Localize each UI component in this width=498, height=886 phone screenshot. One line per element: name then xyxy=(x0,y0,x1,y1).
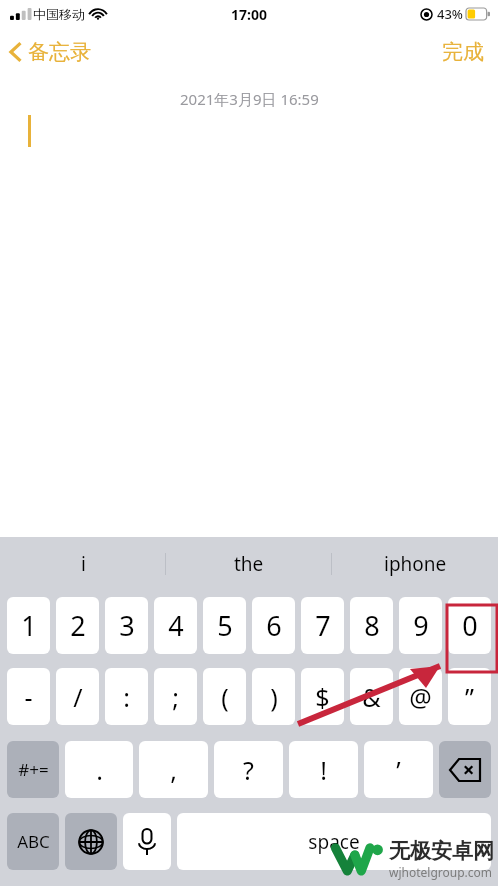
staticText: iphone xyxy=(384,551,447,577)
button[interactable]: 5 xyxy=(203,597,246,654)
staticText: @ xyxy=(409,680,432,714)
button[interactable]: 8 xyxy=(350,597,393,654)
staticText: 5 xyxy=(217,607,233,644)
button[interactable]: ( xyxy=(203,668,246,725)
button[interactable]: , xyxy=(139,741,208,798)
button[interactable]: 9 xyxy=(399,597,442,654)
button[interactable]: / xyxy=(56,668,99,725)
staticText: ? xyxy=(243,753,254,787)
button[interactable]: ? xyxy=(214,741,283,798)
button[interactable]: 1 xyxy=(7,597,50,654)
button[interactable]: : xyxy=(105,668,148,725)
button[interactable]: Delete xyxy=(439,741,491,798)
staticText: - xyxy=(24,680,33,714)
staticText: 8 xyxy=(364,607,380,644)
staticText: ( xyxy=(221,680,229,714)
staticText: 2 xyxy=(70,607,86,644)
staticText: 43% xyxy=(437,5,463,23)
staticText: ” xyxy=(465,680,474,714)
button[interactable]: Change keyboard xyxy=(65,813,117,870)
staticText: . xyxy=(96,753,103,787)
button[interactable]: ’ xyxy=(364,741,433,798)
staticText: ! xyxy=(320,753,327,787)
staticText: 备忘录 xyxy=(28,39,91,65)
staticText: : xyxy=(123,680,130,714)
staticText: 3 xyxy=(119,607,135,644)
staticText: 中国移动 xyxy=(33,6,85,22)
button[interactable]: - xyxy=(7,668,50,725)
staticText: $ xyxy=(315,680,330,714)
button[interactable]: 备忘录 xyxy=(8,39,91,65)
button[interactable]: space xyxy=(177,813,491,870)
staticText: 无极安卓网 xyxy=(389,838,494,864)
staticText: / xyxy=(73,680,83,714)
staticText: ) xyxy=(270,680,278,714)
staticText: the xyxy=(234,551,264,577)
staticText: 0 xyxy=(462,607,478,644)
button[interactable]: the xyxy=(166,537,332,590)
staticText: 6 xyxy=(266,607,282,644)
staticText: wjhotelgroup.com xyxy=(389,864,493,880)
button[interactable]: ABC xyxy=(7,813,59,870)
staticText: 2021年3月9日 16:59 xyxy=(180,89,319,109)
button[interactable]: i xyxy=(0,537,166,590)
button[interactable]: Dictation xyxy=(123,813,171,870)
button[interactable]: $ xyxy=(301,668,344,725)
button[interactable]: ; xyxy=(154,668,197,725)
button[interactable]: . xyxy=(65,741,133,798)
button[interactable]: 2 xyxy=(56,597,99,654)
staticText: 7 xyxy=(315,607,331,644)
button[interactable]: ” xyxy=(448,668,491,725)
button[interactable]: 6 xyxy=(252,597,295,654)
button[interactable]: @ xyxy=(399,668,442,725)
staticText: 1 xyxy=(21,607,37,644)
staticText: ABC xyxy=(17,830,50,853)
staticText: ’ xyxy=(396,753,401,787)
button[interactable]: iphone xyxy=(332,537,498,590)
staticText: ; xyxy=(172,680,179,714)
button[interactable]: 7 xyxy=(301,597,344,654)
staticText: #+= xyxy=(18,758,49,781)
staticText: 完成 xyxy=(442,39,484,65)
staticText: & xyxy=(362,680,381,714)
staticText: i xyxy=(81,551,86,577)
button[interactable]: ) xyxy=(252,668,295,725)
staticText: 9 xyxy=(413,607,429,644)
button[interactable]: #+= xyxy=(7,741,59,798)
button[interactable]: & xyxy=(350,668,393,725)
button[interactable]: 4 xyxy=(154,597,197,654)
staticText: , xyxy=(170,753,177,787)
button[interactable]: 完成 xyxy=(428,33,498,71)
button[interactable]: 3 xyxy=(105,597,148,654)
button[interactable]: ! xyxy=(289,741,358,798)
button[interactable]: 0 xyxy=(448,597,491,654)
staticText: space xyxy=(308,829,360,855)
staticText: 4 xyxy=(168,607,184,644)
staticText: 17:00 xyxy=(231,5,267,24)
